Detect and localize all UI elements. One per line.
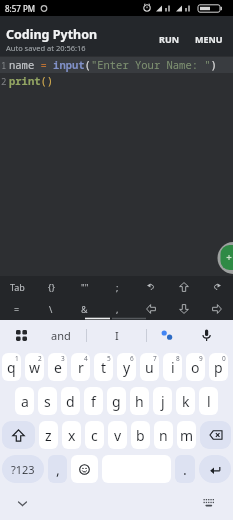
staticText: {} [48, 281, 55, 293]
button[interactable]: n [154, 421, 173, 449]
staticText: 5 [107, 354, 111, 363]
button[interactable]: u [140, 353, 159, 381]
staticText: q [7, 358, 16, 377]
staticText: RUN [159, 33, 180, 45]
button[interactable]: w [25, 353, 44, 381]
staticText: Coding Python [6, 26, 98, 43]
button[interactable]: r [71, 353, 90, 381]
button[interactable]: RUN [155, 29, 184, 49]
staticText: 9 [199, 354, 203, 363]
button[interactable]: "" [68, 276, 101, 298]
button[interactable] [200, 276, 233, 298]
staticText: n [159, 426, 168, 445]
button[interactable] [134, 276, 167, 298]
staticText: 1 [1, 59, 7, 71]
button[interactable] [200, 298, 233, 320]
button[interactable]: j [153, 387, 172, 415]
button[interactable] [13, 494, 31, 512]
staticText: 2 [1, 75, 7, 87]
button[interactable]: MENU [191, 29, 227, 49]
button[interactable]: b [131, 421, 150, 449]
button[interactable]: l [199, 387, 218, 415]
staticText: j [161, 392, 165, 411]
staticText: ; [116, 281, 119, 293]
staticText: e [54, 358, 62, 377]
button[interactable]: f [84, 387, 103, 415]
button[interactable] [71, 455, 98, 483]
button[interactable] [2, 421, 35, 449]
button[interactable]: m [177, 421, 196, 449]
staticText: z [45, 426, 52, 445]
staticText: u [145, 358, 154, 377]
button[interactable] [200, 494, 218, 512]
button[interactable]: a [15, 387, 34, 415]
button[interactable]: d [61, 387, 80, 415]
button[interactable]: & [68, 298, 101, 320]
staticText: 7 [153, 354, 157, 363]
staticText: p [214, 358, 223, 377]
button[interactable] [199, 455, 231, 483]
button[interactable]: Tab [0, 276, 34, 298]
staticText: = [14, 303, 20, 315]
staticText: 6 [130, 354, 134, 363]
button[interactable]: v [108, 421, 127, 449]
button[interactable]: p [209, 353, 228, 381]
staticText: x [68, 426, 76, 445]
staticText: y [123, 358, 131, 377]
staticText: 3 [61, 354, 65, 363]
button[interactable]: . [175, 455, 195, 483]
staticText: Tab [10, 281, 25, 293]
button[interactable]: {} [34, 276, 68, 298]
staticText: l [207, 392, 211, 411]
button[interactable]: \ [34, 298, 68, 320]
staticText: name = input("Enter Your Name: ") [9, 58, 217, 72]
staticText: h [135, 392, 144, 411]
button[interactable]: t [94, 353, 113, 381]
button[interactable]: g [107, 387, 126, 415]
button[interactable]: z [39, 421, 58, 449]
button[interactable]: k [176, 387, 195, 415]
button[interactable] [200, 421, 231, 449]
button[interactable]: h [130, 387, 149, 415]
button[interactable] [6, 320, 36, 350]
staticText: 2 [38, 354, 42, 363]
button[interactable]: , [48, 455, 67, 483]
staticText: t [101, 358, 107, 377]
button[interactable] [147, 320, 187, 350]
button[interactable]: i [163, 353, 182, 381]
button[interactable]: q [2, 353, 21, 381]
button[interactable]: ; [101, 276, 134, 298]
staticText: "" [81, 281, 89, 293]
button[interactable]: and [36, 320, 86, 350]
button[interactable] [187, 320, 225, 350]
button[interactable]: ?123 [2, 455, 44, 483]
staticText: 0 [222, 354, 226, 363]
button[interactable]: = [0, 298, 34, 320]
staticText: m [180, 426, 194, 445]
button[interactable]: c [85, 421, 104, 449]
staticText: g [112, 392, 121, 411]
button[interactable] [134, 298, 167, 320]
staticText: I [115, 328, 119, 343]
button[interactable]: y [117, 353, 136, 381]
button[interactable]: o [186, 353, 205, 381]
button[interactable]: x [62, 421, 81, 449]
staticText: 1 [15, 354, 19, 363]
staticText: r [78, 358, 84, 377]
staticText: 8 [176, 354, 180, 363]
button[interactable]: , [101, 298, 134, 320]
staticText: ?123 [11, 462, 35, 477]
staticText: & [81, 303, 88, 315]
staticText: o [191, 358, 200, 377]
button[interactable]: I [87, 320, 146, 350]
button[interactable] [167, 276, 200, 298]
staticText: s [44, 392, 51, 411]
staticText: 4 [84, 354, 88, 363]
button[interactable] [167, 298, 200, 320]
button[interactable]: e [48, 353, 67, 381]
staticText: 8:57 PM [5, 3, 36, 14]
staticText: print() [9, 74, 54, 88]
staticText: k [182, 392, 190, 411]
button[interactable]: s [38, 387, 57, 415]
